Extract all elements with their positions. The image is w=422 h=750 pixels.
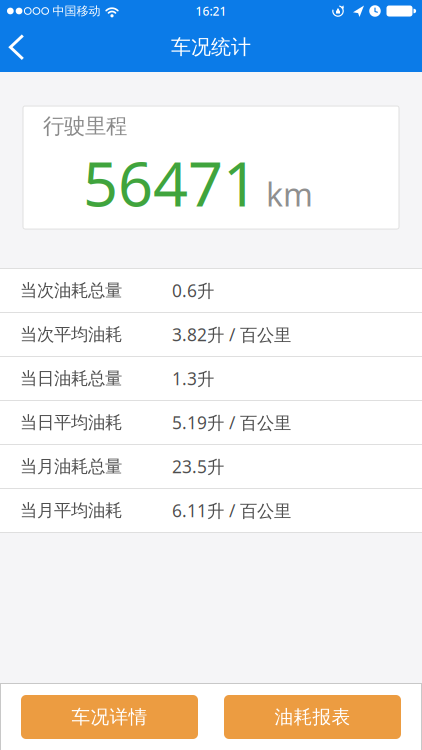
staticText: 当月油耗总量 — [20, 456, 122, 477]
staticText: 当次油耗总量 — [20, 280, 122, 301]
staticText: 中国移动 — [52, 4, 100, 18]
staticText: 56471 — [83, 142, 258, 223]
staticText: 车况统计 — [171, 35, 251, 59]
staticText: 当日平均油耗 — [20, 412, 122, 433]
button[interactable]: 车况详情 — [21, 695, 198, 739]
staticText: 行驶里程 — [43, 113, 127, 139]
staticText: 当次平均油耗 — [20, 324, 122, 345]
staticText: 3.82升 / 百公里 — [172, 323, 291, 346]
staticText: 当日油耗总量 — [20, 368, 122, 389]
button[interactable]: 油耗报表 — [224, 695, 401, 739]
staticText: 16:21 — [195, 3, 226, 19]
button[interactable]: Back — [0, 22, 26, 72]
staticText: km — [266, 173, 313, 215]
staticText: 5.19升 / 百公里 — [172, 411, 291, 434]
staticText: 1.3升 — [172, 367, 214, 390]
staticText: 油耗报表 — [274, 705, 350, 728]
staticText: 23.5升 — [172, 455, 224, 478]
staticText: 6.11升 / 百公里 — [172, 499, 291, 522]
staticText: 当月平均油耗 — [20, 500, 122, 521]
staticText: 0.6升 — [172, 279, 214, 302]
staticText: 车况详情 — [71, 705, 147, 728]
